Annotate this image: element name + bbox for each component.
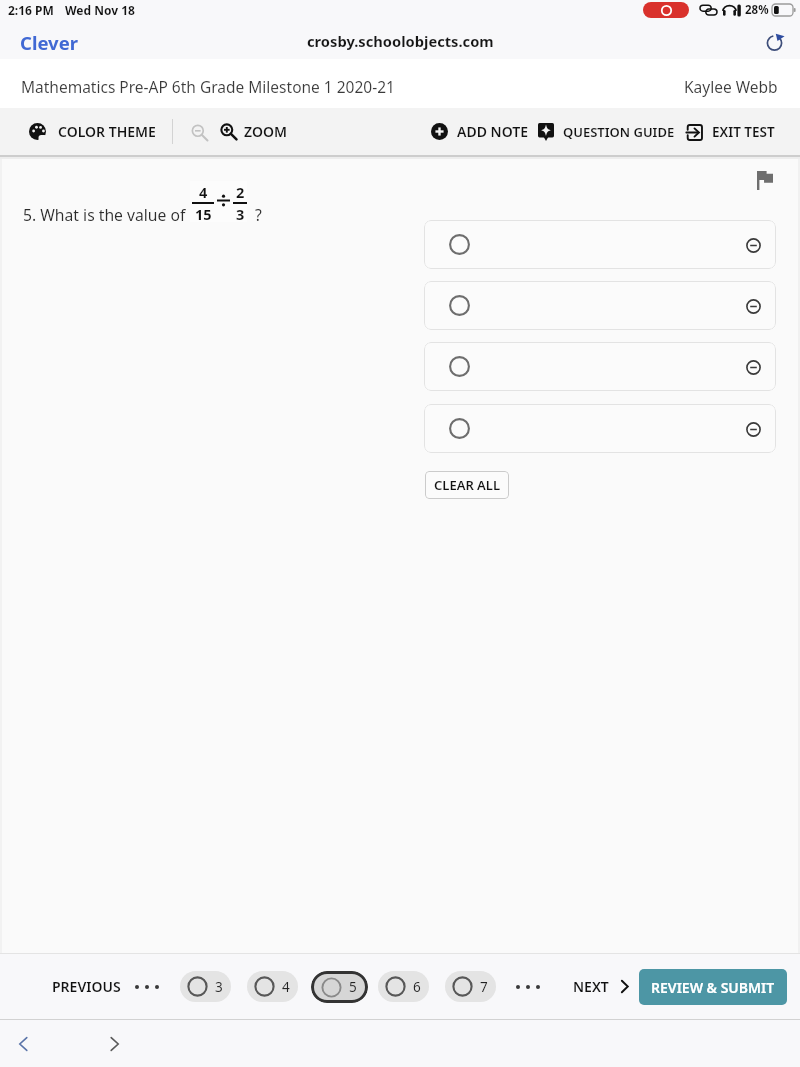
staticText: CLEAR ALL	[434, 476, 501, 494]
button[interactable]: ZOOM	[220, 116, 287, 147]
staticText: Kaylee Webb	[684, 76, 778, 97]
button[interactable]: Clever home	[20, 30, 78, 55]
button[interactable]: QUESTION GUIDE	[538, 117, 675, 147]
button[interactable]: Eliminate answer choice	[424, 281, 776, 330]
button[interactable]: Eliminate answer choice	[740, 293, 766, 319]
staticText: EXIT TEST	[712, 123, 775, 141]
staticText: QUESTION GUIDE	[563, 123, 675, 141]
staticText: 2:16 PM	[8, 2, 54, 18]
staticText: ?	[255, 204, 262, 225]
staticText: 5. What is the value of	[23, 204, 186, 225]
button[interactable]: 3	[180, 971, 231, 1002]
button[interactable]: PREVIOUS	[52, 969, 121, 1004]
button[interactable]: 7	[445, 971, 496, 1002]
button[interactable]: Eliminate answer choice	[740, 232, 766, 258]
staticText: 3	[215, 978, 223, 996]
button[interactable]: Eliminate answer choice	[740, 354, 766, 380]
staticText: 4	[282, 978, 290, 996]
button[interactable]: NEXT	[573, 969, 630, 1004]
button[interactable]: Reload page	[761, 29, 787, 55]
button[interactable]: 6	[378, 971, 429, 1002]
staticText: 4	[199, 182, 208, 202]
staticText: Wed Nov 18	[65, 2, 135, 18]
button[interactable]: Eliminate answer choice	[740, 416, 766, 442]
button[interactable]: Flag question	[751, 166, 779, 194]
staticText: REVIEW & SUBMIT	[651, 978, 775, 997]
button[interactable]: CLEAR ALL	[425, 471, 509, 499]
staticText: 3	[236, 204, 245, 223]
button[interactable]: REVIEW & SUBMIT	[639, 969, 787, 1005]
button[interactable]: 5	[311, 971, 368, 1003]
staticText: Clever	[20, 30, 78, 55]
button[interactable]: COLOR THEME	[29, 116, 156, 147]
button[interactable]: Eliminate answer choice	[424, 342, 776, 391]
staticText: ADD NOTE	[457, 122, 529, 141]
button[interactable]: Back	[10, 1030, 38, 1058]
button[interactable]: Eliminate answer choice	[424, 220, 776, 269]
button[interactable]: EXIT TEST	[686, 117, 775, 147]
button[interactable]: 4	[247, 971, 298, 1002]
staticText: 28%	[745, 2, 769, 18]
staticText: 2	[236, 182, 245, 202]
staticText: 7	[480, 978, 488, 996]
button[interactable]: Forward	[100, 1030, 128, 1058]
staticText: 5	[349, 978, 357, 996]
staticText: PREVIOUS	[52, 977, 121, 996]
staticText: NEXT	[573, 977, 609, 996]
staticText: 6	[413, 978, 421, 996]
staticText: crosby.schoolobjects.com	[307, 31, 494, 51]
button[interactable]: ADD NOTE	[431, 116, 529, 147]
staticText: ZOOM	[244, 122, 287, 141]
staticText: COLOR THEME	[58, 122, 156, 141]
button[interactable]: Zoom out	[190, 123, 208, 141]
staticText: 15	[195, 204, 212, 223]
button[interactable]: Eliminate answer choice	[424, 404, 776, 453]
staticText: Mathematics Pre-AP 6th Grade Milestone 1…	[21, 76, 395, 97]
